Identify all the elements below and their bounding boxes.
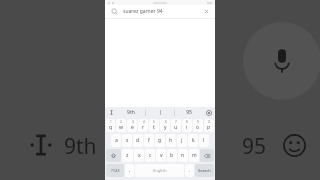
button[interactable]: 9th xyxy=(56,132,104,158)
button[interactable]: m xyxy=(189,149,199,162)
staticText: v xyxy=(160,152,163,159)
button[interactable]: k xyxy=(188,134,198,147)
button[interactable]: h xyxy=(166,134,176,147)
staticText: h xyxy=(169,137,173,144)
staticText: e xyxy=(131,124,134,131)
other: Clear xyxy=(203,8,210,15)
staticText: n xyxy=(181,152,185,159)
button[interactable]: 9 xyxy=(193,119,203,132)
button[interactable]: Text cursor xyxy=(105,107,117,118)
button[interactable]: ?123 xyxy=(106,164,124,177)
button[interactable]: 95 xyxy=(232,132,276,158)
staticText: 95 xyxy=(242,132,267,158)
button[interactable]: z xyxy=(122,149,133,162)
staticText: j xyxy=(181,137,183,144)
staticText: g xyxy=(158,137,162,144)
button[interactable]: b xyxy=(167,149,177,162)
other: Keyboard settings xyxy=(206,110,212,116)
staticText: x xyxy=(138,152,141,159)
staticText: 95 xyxy=(186,109,192,116)
staticText: 7 xyxy=(175,120,177,124)
button[interactable]: s xyxy=(122,134,132,147)
staticText: q xyxy=(109,124,113,131)
staticText: l xyxy=(203,137,205,144)
button[interactable]: . xyxy=(185,164,194,177)
other: Emoji xyxy=(283,134,306,157)
button[interactable]: 9th xyxy=(117,107,145,118)
button[interactable]: 5 xyxy=(149,119,159,132)
staticText: 5 xyxy=(153,120,155,124)
button[interactable]: l xyxy=(199,134,209,147)
staticText: f xyxy=(148,137,150,144)
button[interactable]: Backspace xyxy=(200,149,214,162)
staticText: t xyxy=(153,124,155,131)
staticText: m xyxy=(192,152,197,159)
staticText: | xyxy=(159,109,162,116)
button[interactable]: 7 xyxy=(171,119,181,132)
staticText: 6 xyxy=(165,120,167,124)
staticText: 9th xyxy=(64,132,97,158)
button[interactable]: Search xyxy=(105,5,215,18)
button[interactable]: j xyxy=(177,134,187,147)
button[interactable]: 2 xyxy=(116,119,126,132)
staticText: i xyxy=(186,124,188,131)
other: Text cursor xyxy=(30,133,52,157)
staticText: s xyxy=(126,137,129,144)
button[interactable]: a xyxy=(111,134,121,147)
other: Text cursor xyxy=(109,110,114,115)
button[interactable]: f xyxy=(144,134,154,147)
button[interactable]: v xyxy=(156,149,166,162)
staticText: y xyxy=(164,124,167,131)
staticText: suarez garner 94 xyxy=(123,8,163,15)
staticText: 4 xyxy=(143,120,145,124)
button[interactable]: g xyxy=(155,134,165,147)
button[interactable]: 95 xyxy=(175,107,203,118)
staticText: 0 xyxy=(208,120,210,124)
button[interactable]: 8 xyxy=(182,119,192,132)
staticText: w xyxy=(119,124,123,131)
button[interactable]: | xyxy=(146,107,174,118)
staticText: a xyxy=(115,137,118,144)
button[interactable]: , xyxy=(125,164,134,177)
button[interactable]: Voice input xyxy=(243,22,320,100)
button[interactable]: x xyxy=(134,149,144,162)
staticText: 2 xyxy=(120,120,122,124)
button[interactable]: d xyxy=(133,134,143,147)
staticText: . xyxy=(189,167,191,174)
staticText: r xyxy=(142,124,145,131)
staticText: 9 xyxy=(197,120,199,124)
staticText: d xyxy=(136,137,140,144)
other: Search xyxy=(111,8,118,15)
staticText: p xyxy=(207,124,211,131)
button[interactable]: 6 xyxy=(160,119,170,132)
staticText: 9th xyxy=(127,109,135,116)
button[interactable]: 1 xyxy=(106,119,115,132)
button[interactable]: Keyboard settings xyxy=(203,107,215,118)
staticText: , xyxy=(129,167,131,174)
button[interactable]: Space xyxy=(135,164,184,177)
staticText: k xyxy=(192,137,195,144)
staticText: English xyxy=(153,168,167,173)
button[interactable]: 3 xyxy=(127,119,137,132)
staticText: 8 xyxy=(186,120,188,124)
staticText: 1 xyxy=(110,120,112,124)
button[interactable]: Shift xyxy=(106,149,121,162)
staticText: z xyxy=(126,152,129,159)
staticText: ?123 xyxy=(111,168,120,173)
staticText: Search xyxy=(198,168,211,173)
staticText: o xyxy=(196,124,200,131)
button[interactable]: n xyxy=(178,149,188,162)
staticText: u xyxy=(174,124,178,131)
button[interactable]: Search xyxy=(195,164,214,177)
button[interactable]: 0 xyxy=(204,119,214,132)
other: Microphone xyxy=(272,48,292,74)
button[interactable]: 4 xyxy=(138,119,148,132)
staticText: c xyxy=(149,152,152,159)
staticText: 3 xyxy=(132,120,134,124)
button[interactable]: c xyxy=(145,149,155,162)
staticText: b xyxy=(170,152,174,159)
